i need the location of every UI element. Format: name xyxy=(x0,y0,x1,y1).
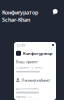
staticText: Конфигуратор Schar-Khan xyxy=(2,9,38,23)
staticText: Дополнительно xyxy=(16,87,39,90)
staticText: Ваш проект xyxy=(16,59,38,64)
staticText: 12:49 xyxy=(16,42,25,48)
staticText: Версия 1.2 xyxy=(16,95,32,98)
staticText: Сохранён 12 июня xyxy=(16,66,43,69)
staticText: Конфигуратор xyxy=(23,51,53,56)
staticText: Личный кабинет xyxy=(22,77,51,83)
button[interactable]: Чат xyxy=(53,9,58,15)
